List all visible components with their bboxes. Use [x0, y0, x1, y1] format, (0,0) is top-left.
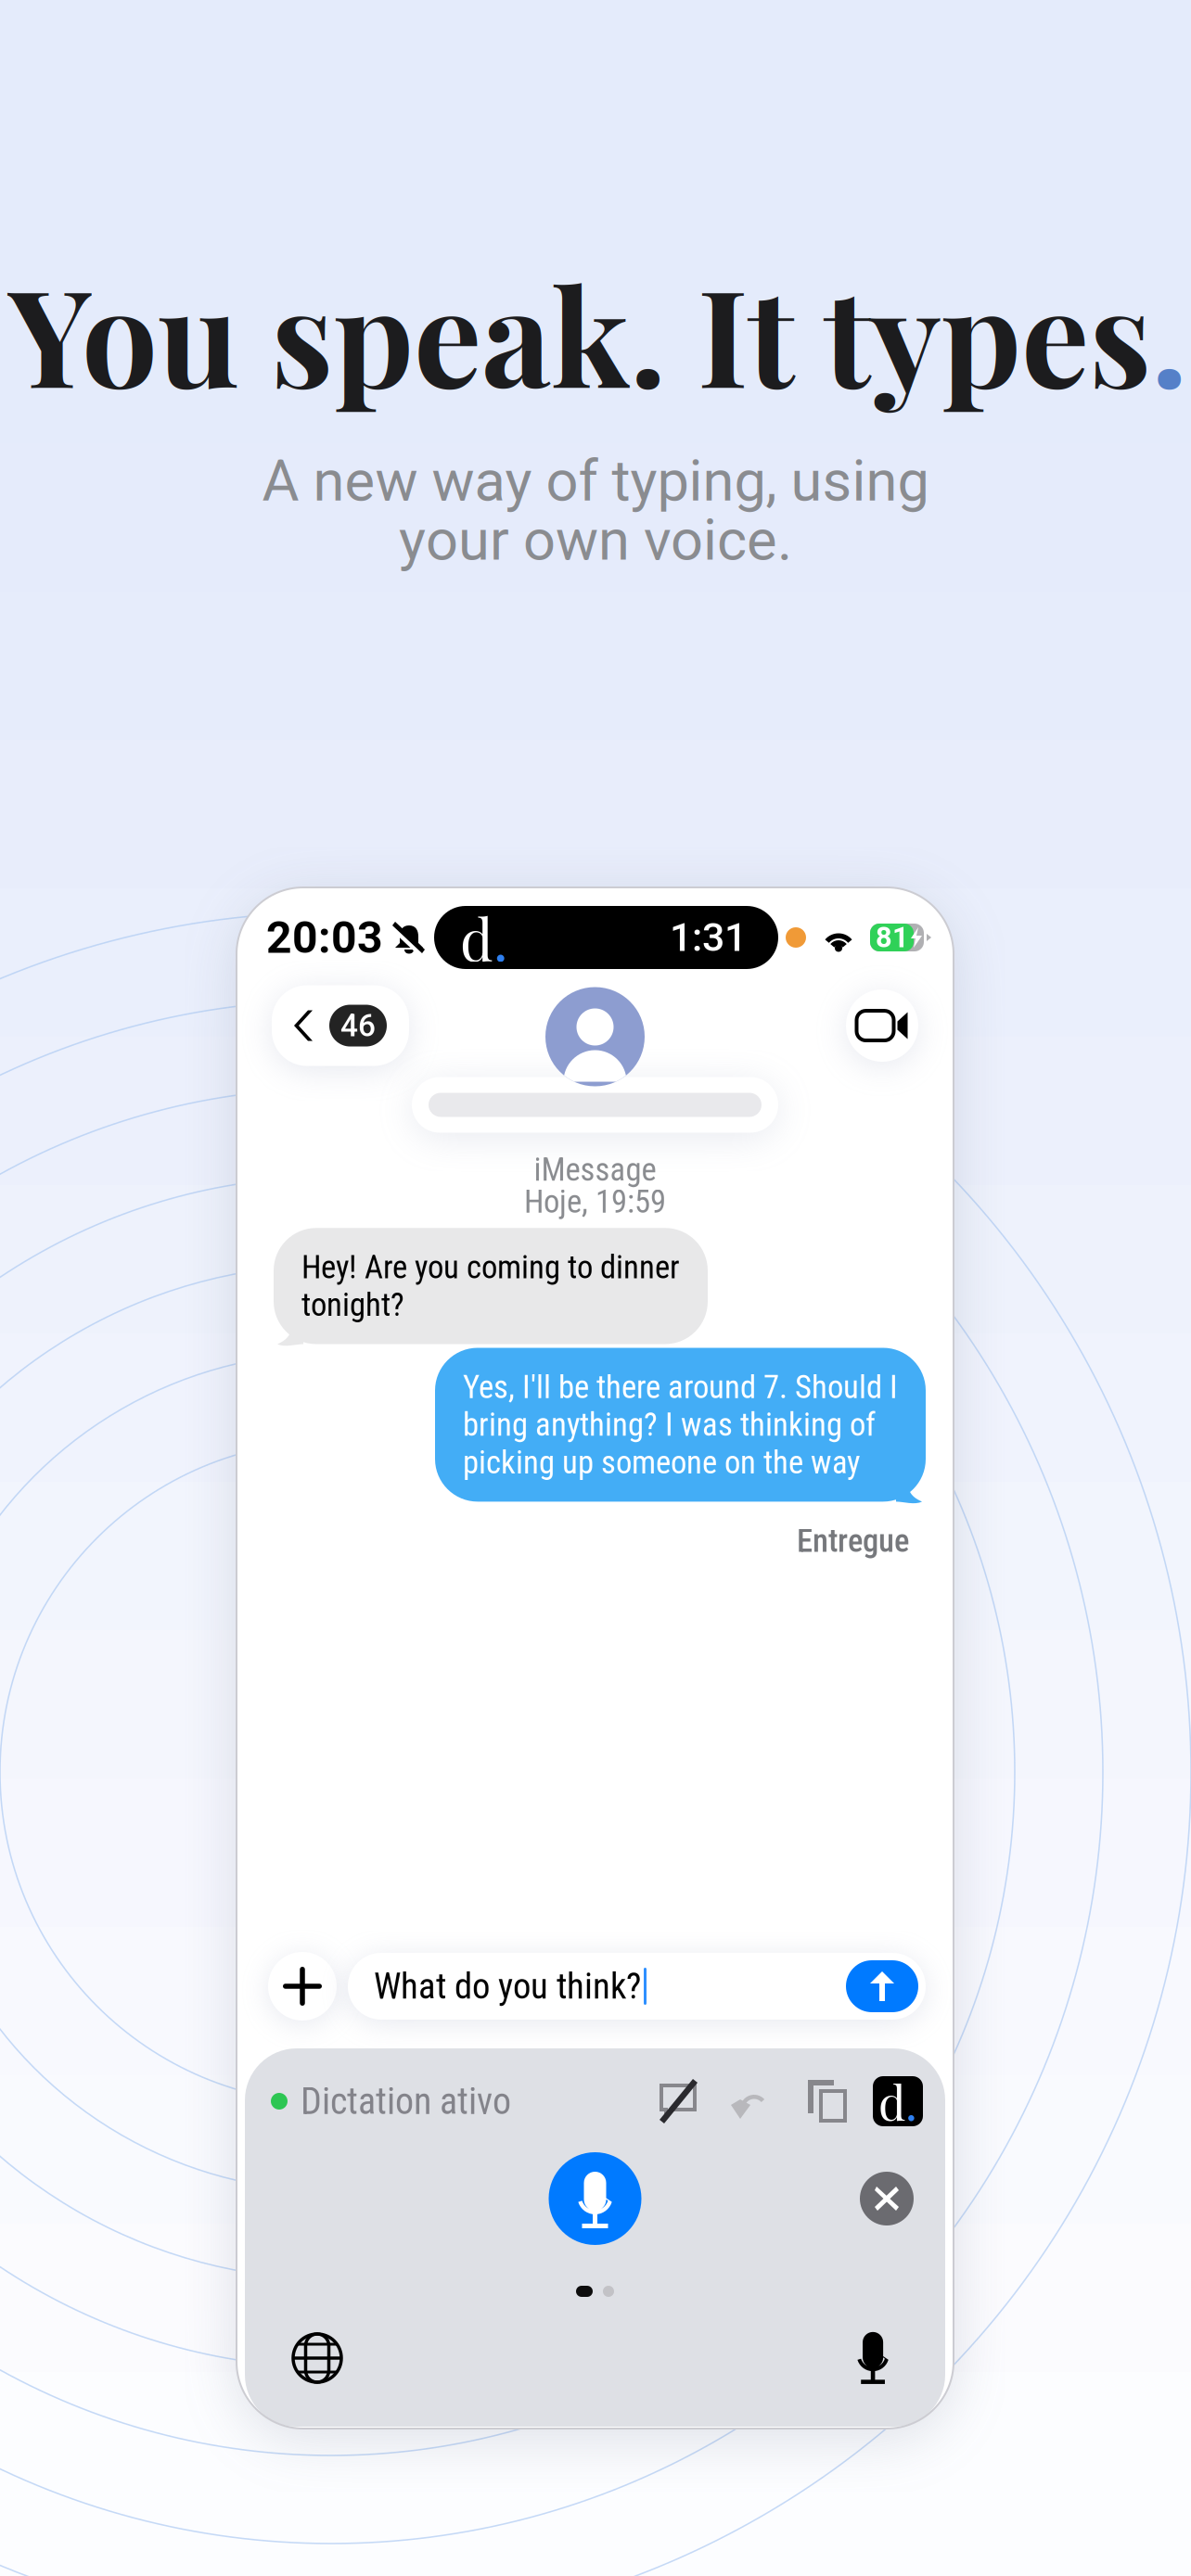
- button[interactable]: Send: [846, 1960, 926, 2012]
- button[interactable]: Microphone: [852, 2330, 893, 2386]
- staticText: Hoje, 19:59: [524, 1183, 666, 1220]
- staticText: Dictation ativo: [301, 2080, 511, 2123]
- staticText: iMessage: [534, 1151, 656, 1188]
- staticText: Entregue: [797, 1522, 909, 1560]
- staticText: d: [460, 900, 493, 975]
- staticText: .: [1151, 242, 1187, 422]
- staticText: Hey! Are you coming to dinner tonight?: [301, 1248, 680, 1324]
- staticText: You speak. It types: [8, 242, 1151, 422]
- button[interactable]: Close: [860, 2172, 914, 2225]
- staticText: .: [905, 2070, 917, 2132]
- button[interactable]: Add attachment: [268, 1952, 337, 2021]
- staticText: 1:31: [670, 914, 747, 961]
- staticText: 20:03: [266, 911, 383, 964]
- staticText: your own voice.: [399, 507, 792, 574]
- staticText: Yes, I'll be there around 7. Should I br…: [463, 1368, 898, 1481]
- button[interactable]: Disable suggestions: [656, 2079, 700, 2123]
- button[interactable]: FaceTime: [846, 989, 918, 1062]
- button[interactable]: Undo: [700, 2081, 776, 2122]
- button[interactable]: Copy: [776, 2078, 849, 2124]
- staticText: What do you think?: [374, 1965, 641, 2007]
- button[interactable]: Dictate: [549, 2152, 641, 2245]
- button[interactable]: 46: [272, 985, 409, 1066]
- staticText: 46: [340, 1007, 376, 1044]
- staticText: .: [493, 900, 507, 975]
- button[interactable]: App: [849, 2076, 923, 2126]
- button[interactable]: Switch keyboard: [293, 2334, 341, 2382]
- staticText: d: [878, 2070, 905, 2132]
- staticText: A new way of typing, using: [262, 448, 929, 514]
- staticText: 81: [876, 921, 909, 954]
